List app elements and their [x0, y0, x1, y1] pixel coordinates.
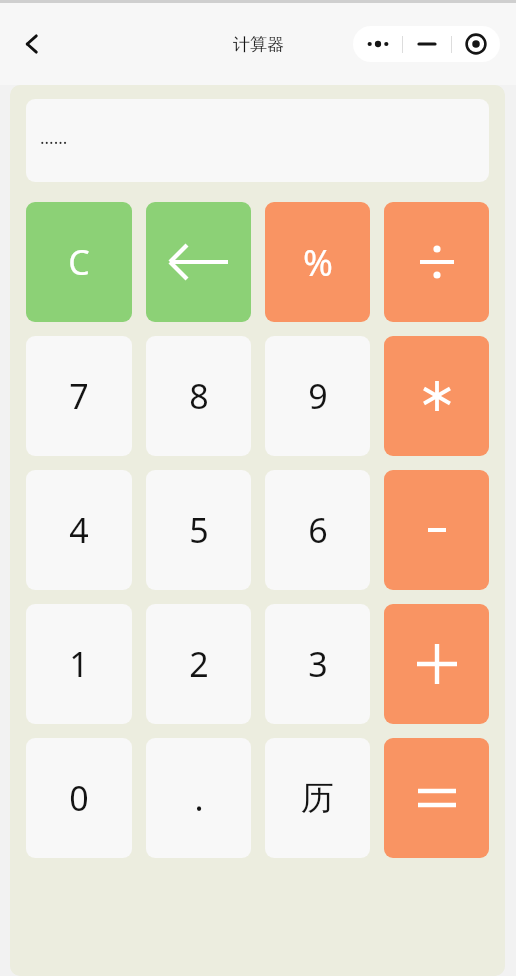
staticText: 1: [69, 641, 89, 687]
button[interactable]: 4: [26, 470, 132, 590]
staticText: 计算器: [233, 34, 284, 55]
staticText: 2: [189, 641, 209, 687]
staticText: ......: [40, 126, 68, 149]
button[interactable]: Close: [452, 26, 500, 62]
button[interactable]: Divide: [384, 202, 489, 322]
staticText: %: [303, 238, 333, 287]
button[interactable]: 2: [146, 604, 251, 724]
button[interactable]: 7: [26, 336, 132, 456]
button[interactable]: Minus: [384, 470, 489, 590]
staticText: 9: [308, 373, 328, 419]
button[interactable]: 3: [265, 604, 370, 724]
button[interactable]: ......: [26, 99, 489, 182]
button[interactable]: Minimize: [403, 26, 451, 62]
button[interactable]: %: [265, 202, 370, 322]
button[interactable]: C: [26, 202, 132, 322]
staticText: .: [194, 775, 204, 821]
button[interactable]: Equals: [384, 738, 489, 858]
staticText: C: [68, 239, 90, 285]
staticText: 8: [189, 373, 209, 419]
button[interactable]: 历: [265, 738, 370, 858]
button[interactable]: 5: [146, 470, 251, 590]
staticText: 6: [308, 507, 328, 553]
button[interactable]: Multiply: [384, 336, 489, 456]
button[interactable]: 1: [26, 604, 132, 724]
button[interactable]: 6: [265, 470, 370, 590]
button[interactable]: More: [353, 26, 402, 62]
staticText: 4: [69, 507, 89, 553]
button[interactable]: Back: [8, 20, 56, 68]
button[interactable]: 9: [265, 336, 370, 456]
staticText: 3: [308, 641, 328, 687]
button[interactable]: 8: [146, 336, 251, 456]
button[interactable]: 0: [26, 738, 132, 858]
staticText: 历: [301, 777, 334, 819]
button[interactable]: .: [146, 738, 251, 858]
staticText: 0: [69, 775, 89, 821]
staticText: 5: [189, 507, 209, 553]
staticText: 7: [69, 373, 89, 419]
button[interactable]: Backspace: [146, 202, 251, 322]
button[interactable]: Plus: [384, 604, 489, 724]
